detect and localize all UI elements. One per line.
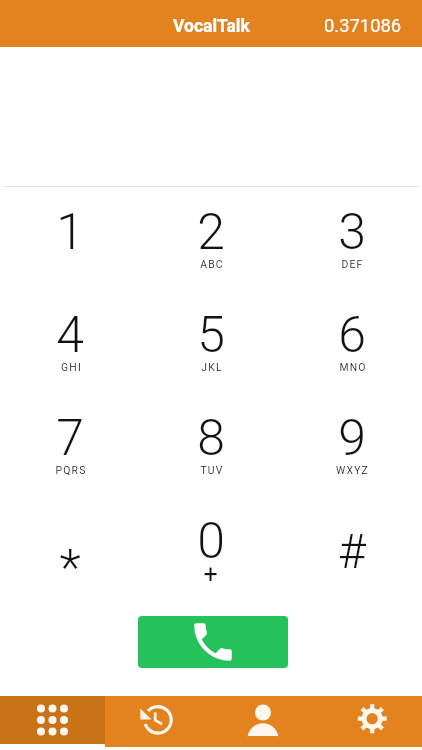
staticText: 5	[197, 306, 225, 365]
button[interactable]: 7	[0, 393, 140, 496]
staticText: WXYZ	[336, 464, 369, 476]
staticText: GHI	[61, 361, 82, 373]
button[interactable]: Contacts	[210, 696, 316, 750]
staticText: VocalTalk	[173, 16, 250, 37]
button[interactable]: *	[0, 496, 140, 599]
button[interactable]: 4	[0, 290, 140, 393]
staticText: PQRS	[55, 464, 87, 476]
button[interactable]: Settings	[316, 696, 422, 750]
button[interactable]: Dialpad	[0, 696, 105, 750]
button[interactable]: #	[281, 496, 422, 599]
staticText: 4	[56, 306, 84, 365]
staticText: 7	[56, 409, 84, 468]
staticText: 6	[338, 306, 366, 365]
button[interactable]: 1	[0, 187, 140, 290]
staticText: +	[203, 560, 218, 589]
staticText: 3	[338, 203, 366, 262]
button[interactable]: Recents	[105, 696, 210, 750]
staticText: MNO	[339, 361, 367, 373]
button[interactable]: 0	[140, 496, 281, 599]
button[interactable]: 8	[140, 393, 281, 496]
button[interactable]: 6	[281, 290, 422, 393]
staticText: #	[338, 523, 366, 579]
staticText: 1	[56, 203, 84, 262]
staticText: 2	[197, 203, 225, 262]
staticText: JKL	[201, 361, 223, 373]
staticText: 0	[197, 512, 225, 571]
staticText: ABC	[200, 258, 224, 270]
button[interactable]: 2	[140, 187, 281, 290]
staticText: TUV	[200, 464, 224, 476]
button[interactable]: Call	[138, 616, 288, 668]
staticText: 9	[338, 409, 366, 468]
button[interactable]: 9	[281, 393, 422, 496]
staticText: *	[59, 539, 81, 598]
staticText: DEF	[341, 258, 364, 270]
button[interactable]: 3	[281, 187, 422, 290]
staticText: 8	[197, 409, 225, 468]
staticText: 0.371086	[324, 15, 402, 37]
button[interactable]: 5	[140, 290, 281, 393]
